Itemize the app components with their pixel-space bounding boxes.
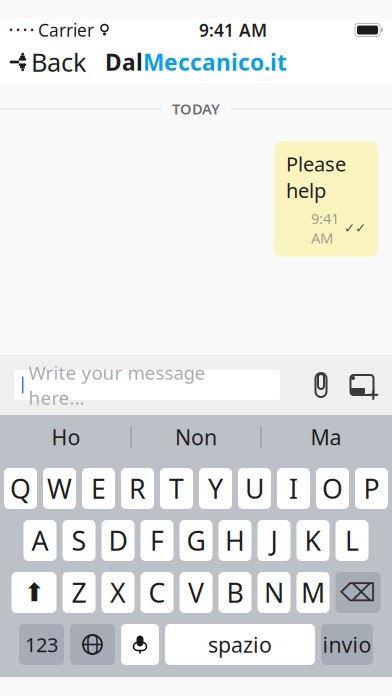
staticText: O <box>322 471 343 506</box>
button[interactable]: E <box>82 468 115 509</box>
staticText: Ho <box>51 423 80 451</box>
staticText: C <box>148 575 165 610</box>
button[interactable]: Q <box>4 468 37 509</box>
button[interactable]: Non <box>131 415 260 459</box>
button[interactable]: S <box>62 520 95 561</box>
button[interactable]: T <box>160 468 193 509</box>
button[interactable]: D <box>101 520 134 561</box>
button[interactable]: V <box>179 572 212 613</box>
button[interactable]: Delete <box>335 572 380 613</box>
staticText: E <box>91 471 106 506</box>
button[interactable]: Ho <box>1 415 130 459</box>
button[interactable]: W <box>43 468 76 509</box>
staticText: J <box>270 523 277 558</box>
staticText: TODAY <box>172 99 220 118</box>
staticText: R <box>129 471 146 506</box>
button[interactable]: G <box>179 520 212 561</box>
button[interactable]: Next keyboard <box>70 624 115 665</box>
staticText: S <box>71 523 86 558</box>
button[interactable]: K <box>296 520 329 561</box>
staticText: Z <box>71 575 86 610</box>
staticText: Write your message here... <box>28 360 205 410</box>
button[interactable]: A <box>23 520 56 561</box>
staticText: Carrier <box>38 18 94 41</box>
staticText: W <box>47 471 72 506</box>
button[interactable]: F <box>140 520 173 561</box>
button[interactable]: N <box>257 572 290 613</box>
staticText: D <box>108 523 127 558</box>
staticText: U <box>245 471 264 506</box>
button[interactable]: Shift <box>11 572 56 613</box>
staticText: invio <box>322 630 371 659</box>
staticText: Ma <box>310 423 341 451</box>
staticText: ⌫ <box>340 578 376 607</box>
button[interactable]: I <box>277 468 310 509</box>
staticText: 9:41 AM <box>199 18 267 41</box>
staticText: A <box>31 523 48 558</box>
staticText: V <box>188 575 204 610</box>
staticText: ✓✓ <box>344 220 366 236</box>
button[interactable]: X <box>101 572 134 613</box>
staticText: L <box>345 523 359 558</box>
staticText: P <box>363 471 379 506</box>
staticText: B <box>226 575 243 610</box>
staticText: K <box>304 523 321 558</box>
staticText: T <box>169 471 184 506</box>
staticText: X <box>110 575 126 610</box>
staticText: spazio <box>208 630 272 659</box>
staticText: N <box>264 575 284 610</box>
staticText: Meccanico.it <box>143 47 287 77</box>
staticText: + <box>367 381 378 407</box>
staticText: Non <box>175 423 217 451</box>
staticText: F <box>150 523 164 558</box>
staticText: ⬆ <box>23 578 44 607</box>
button[interactable]: M <box>296 572 329 613</box>
button[interactable]: 123 <box>19 624 64 665</box>
button[interactable]: Write your message here... <box>14 370 280 400</box>
button[interactable]: Attach file <box>306 370 336 400</box>
staticText: Y <box>208 471 223 506</box>
button[interactable]: C <box>140 572 173 613</box>
staticText: I <box>289 471 298 506</box>
button[interactable]: invio <box>321 624 373 665</box>
button[interactable]: H <box>218 520 251 561</box>
button[interactable]: R <box>121 468 154 509</box>
staticText: H <box>225 523 245 558</box>
button[interactable]: Y <box>199 468 232 509</box>
button[interactable]: B <box>218 572 251 613</box>
button[interactable]: spazio <box>165 624 315 665</box>
staticText: 123 <box>25 631 58 658</box>
staticText: M <box>301 575 325 610</box>
button[interactable]: Add photo <box>336 370 378 400</box>
button[interactable]: J <box>257 520 290 561</box>
staticText: 9:41 AM <box>311 209 339 248</box>
button[interactable]: Back <box>0 42 100 82</box>
button[interactable]: L <box>335 520 368 561</box>
staticText: Dal <box>105 47 143 77</box>
button[interactable]: O <box>316 468 349 509</box>
staticText: G <box>186 523 205 558</box>
button[interactable]: U <box>238 468 271 509</box>
button[interactable]: Ma <box>261 415 390 459</box>
button[interactable]: Z <box>62 572 95 613</box>
staticText: Please help <box>286 150 346 204</box>
staticText: • • • • <box>9 23 34 37</box>
staticText: Q <box>10 471 31 506</box>
button[interactable]: P <box>355 468 388 509</box>
button[interactable]: Dictation <box>121 624 159 665</box>
staticText: Back <box>31 45 87 79</box>
